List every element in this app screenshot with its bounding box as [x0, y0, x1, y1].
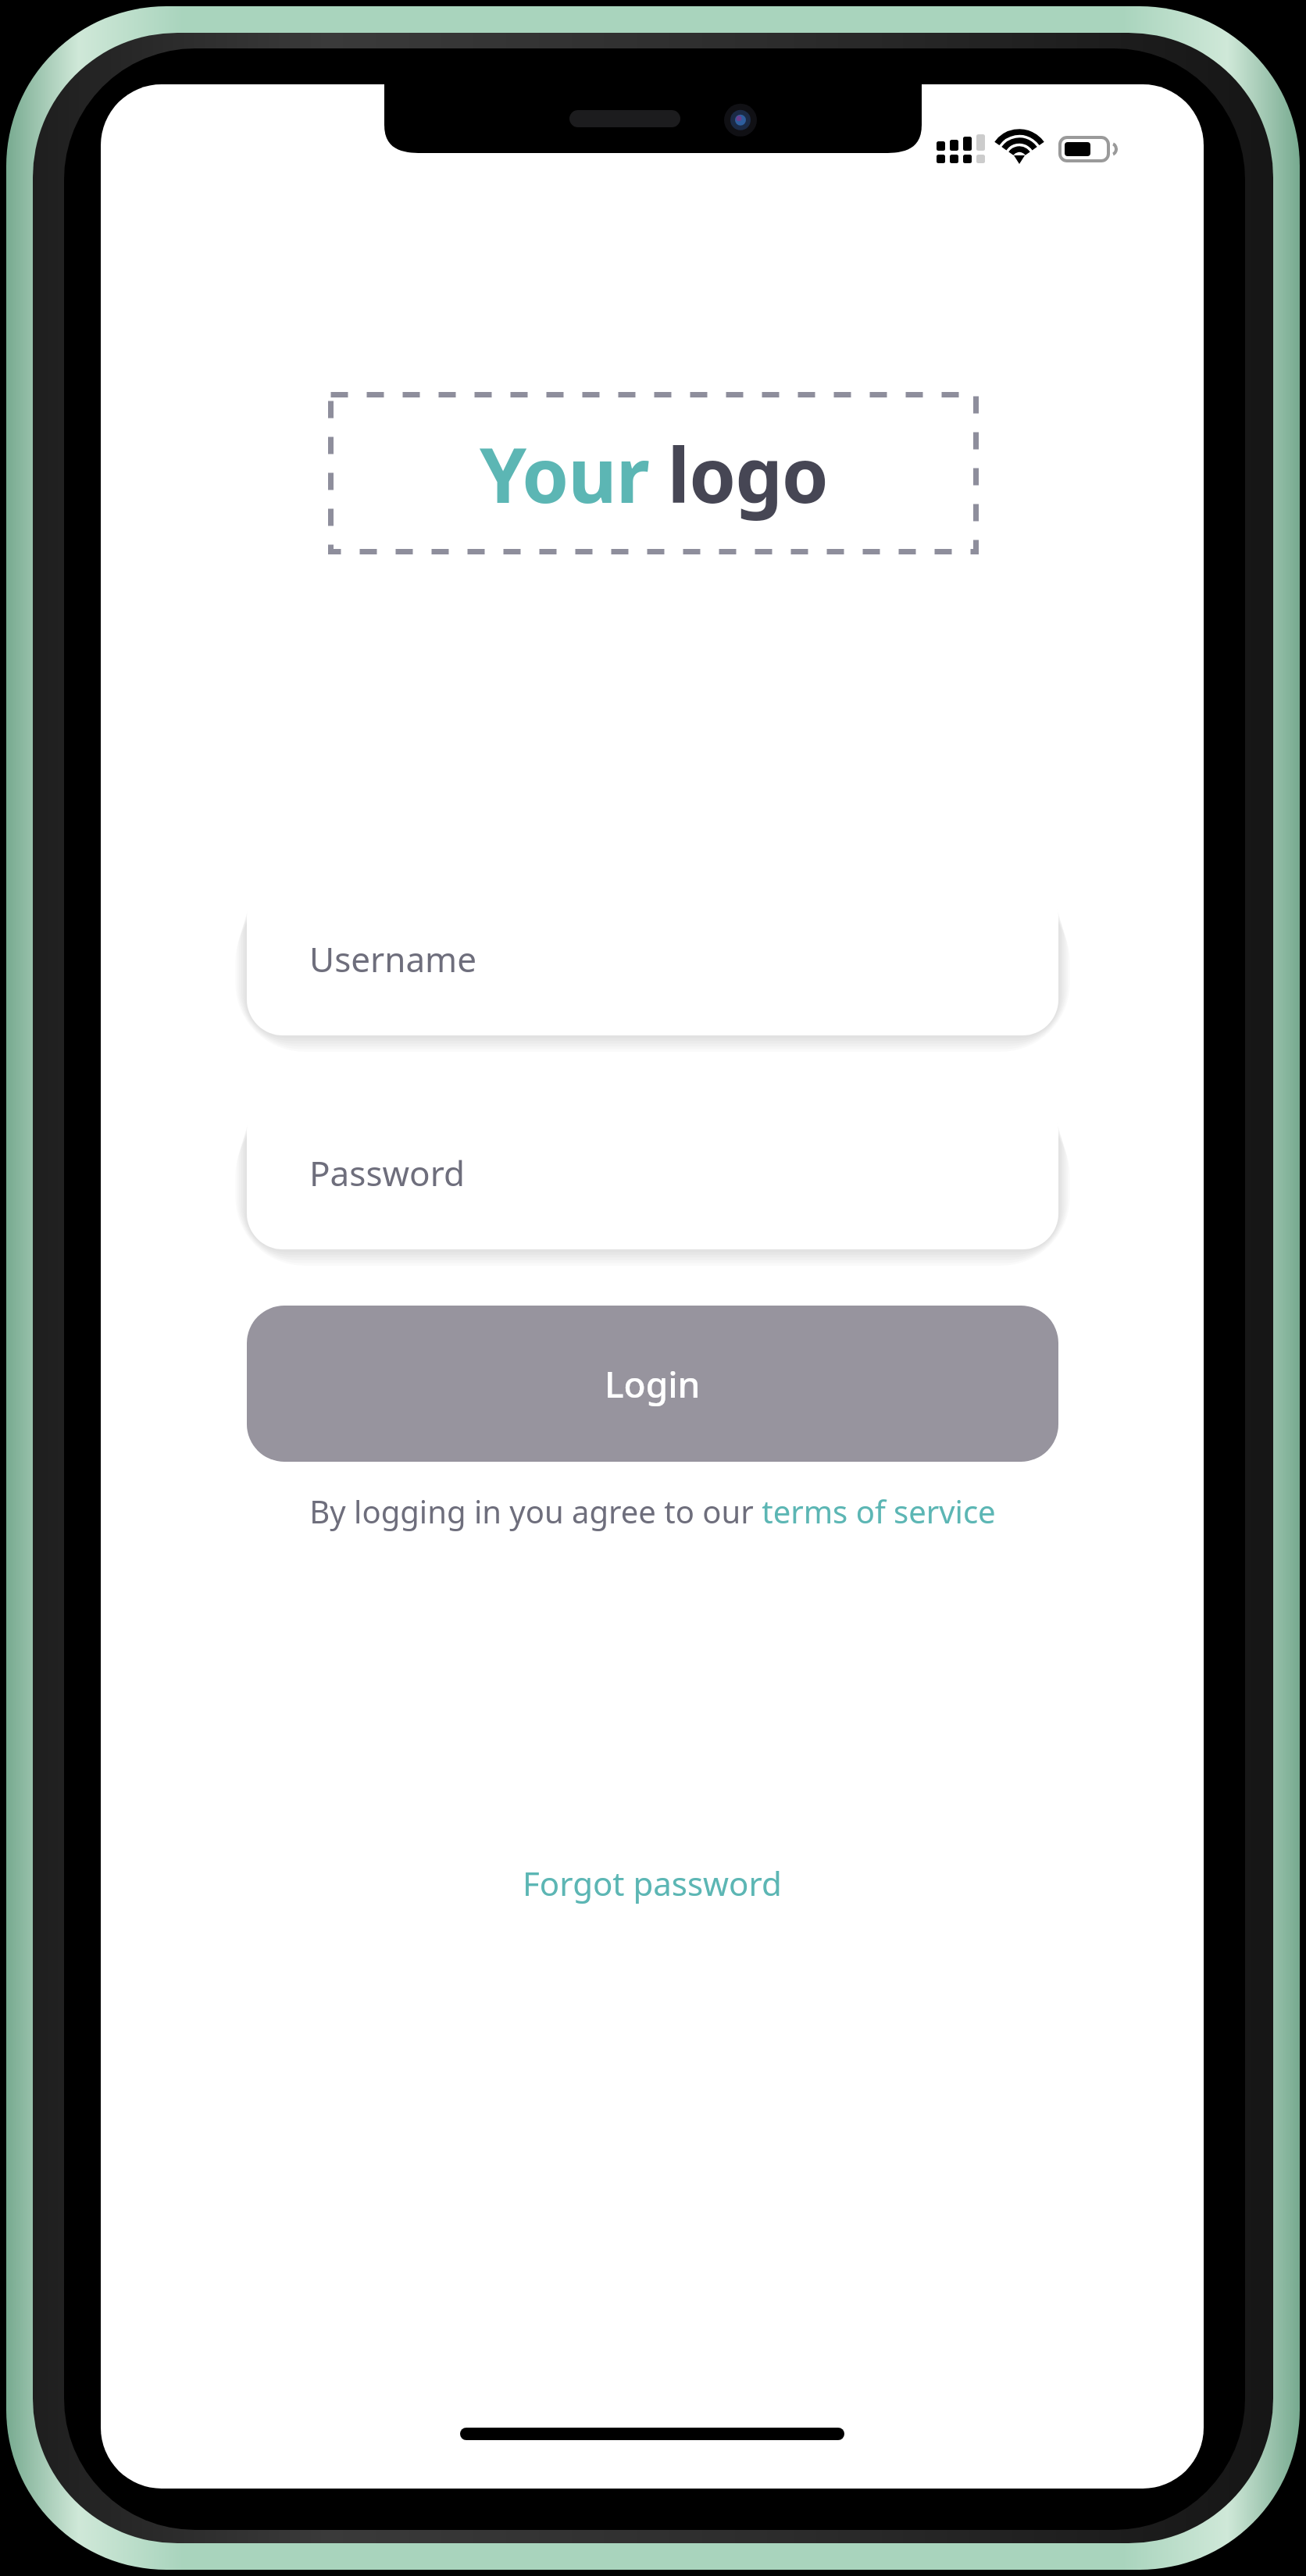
staticText: Your logo	[480, 422, 828, 525]
staticText: By logging in you agree to our terms of …	[309, 1490, 996, 1532]
button[interactable]: By logging in you agree to our terms of …	[101, 1490, 1204, 1576]
button[interactable]: Username	[247, 882, 1058, 1035]
button[interactable]: Password	[247, 1096, 1058, 1249]
staticText: Login	[605, 1359, 701, 1409]
staticText: Password	[309, 1149, 466, 1196]
staticText: Forgot password	[523, 1861, 782, 1905]
button[interactable]: Login	[247, 1306, 1058, 1462]
button[interactable]: Forgot password	[101, 1861, 1204, 1939]
staticText: Username	[309, 935, 477, 982]
